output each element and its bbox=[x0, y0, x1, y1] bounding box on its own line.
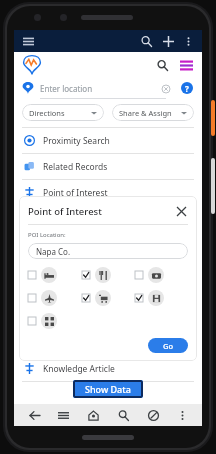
button[interactable]: Category 4 bbox=[95, 290, 111, 306]
button[interactable]: Show Data bbox=[73, 380, 143, 398]
button[interactable]: Proximity Search bbox=[14, 128, 202, 153]
staticText: Go bbox=[163, 341, 174, 351]
staticText: ? bbox=[185, 83, 189, 94]
button[interactable]: Menu bbox=[21, 34, 35, 48]
button[interactable]: Napa Co. bbox=[28, 243, 188, 259]
button[interactable]: Related Records bbox=[14, 154, 202, 179]
button[interactable]: Navigation menu bbox=[178, 57, 194, 73]
staticText: Enter location bbox=[40, 83, 93, 94]
button[interactable]: Add bbox=[160, 33, 176, 49]
button[interactable]: More options bbox=[181, 34, 195, 48]
button[interactable]: Directions bbox=[22, 104, 104, 121]
button[interactable]: Search bbox=[138, 33, 154, 49]
staticText: POI Location: bbox=[28, 231, 66, 239]
button[interactable]: Category 1 bbox=[95, 267, 111, 283]
button[interactable]: Category 6 bbox=[28, 313, 57, 329]
button[interactable]: Close bbox=[174, 204, 188, 218]
staticText: Show Data bbox=[85, 383, 131, 395]
button[interactable]: Home bbox=[83, 405, 103, 425]
button[interactable]: Category 6 bbox=[41, 313, 57, 329]
button[interactable]: Category 1 bbox=[82, 267, 111, 283]
button[interactable]: Category 0 bbox=[41, 267, 57, 283]
button[interactable]: Search bbox=[113, 405, 133, 425]
staticText: Napa Co. bbox=[36, 246, 71, 257]
button[interactable]: Help bbox=[180, 81, 194, 95]
button[interactable]: Share & Assign bbox=[112, 104, 194, 121]
button[interactable]: Go bbox=[148, 338, 188, 353]
staticText: Point of Interest bbox=[28, 205, 102, 218]
button[interactable]: Knowledge Article bbox=[14, 356, 202, 381]
button[interactable]: Category 0 bbox=[28, 267, 57, 283]
button[interactable]: Menu bbox=[53, 405, 73, 425]
button[interactable]: Category 3 bbox=[41, 290, 57, 306]
button[interactable]: More bbox=[172, 405, 192, 425]
staticText: Knowledge Article bbox=[43, 363, 115, 375]
button[interactable]: Explore bbox=[143, 405, 163, 425]
button[interactable]: Back bbox=[24, 405, 44, 425]
button[interactable]: Category 5 bbox=[135, 290, 164, 306]
button[interactable]: Point of Interest bbox=[14, 180, 202, 205]
staticText: Point of Interest bbox=[43, 187, 108, 199]
button[interactable]: Search bbox=[154, 57, 170, 73]
button[interactable]: Category 2 bbox=[135, 267, 164, 283]
button[interactable]: Category 3 bbox=[28, 290, 57, 306]
staticText: Related Records bbox=[43, 161, 108, 173]
button[interactable]: Category 4 bbox=[82, 290, 111, 306]
staticText: Directions bbox=[29, 108, 65, 118]
button[interactable]: Category 2 bbox=[148, 267, 164, 283]
button[interactable]: Clear bbox=[159, 82, 172, 95]
button[interactable]: Category 5 bbox=[148, 290, 164, 306]
staticText: Share & Assign bbox=[119, 108, 172, 118]
staticText: Proximity Search bbox=[43, 135, 110, 147]
